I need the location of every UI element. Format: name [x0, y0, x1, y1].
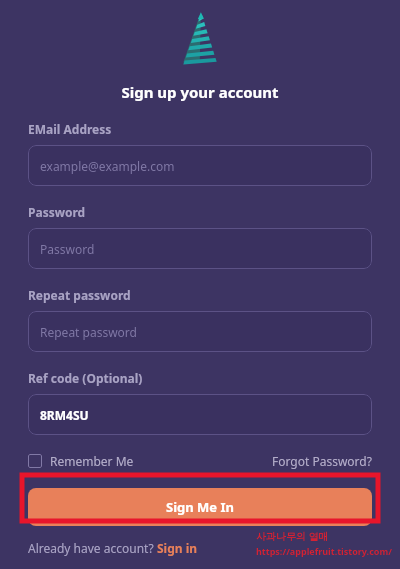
staticText: Forgot Password? [272, 453, 372, 469]
staticText: Already have account? [28, 540, 157, 556]
staticText: Password [28, 204, 86, 220]
staticText: 8RM4SU [40, 407, 89, 423]
button[interactable]: Sign Me In [28, 488, 372, 526]
staticText: Sign up your account [28, 82, 372, 102]
button[interactable]: Remember Me [28, 451, 134, 471]
staticText: Sign Me In [166, 498, 235, 516]
button[interactable]: Sign in [157, 540, 198, 556]
staticText: 사과나무의 열매 [256, 529, 329, 543]
button[interactable]: 8RM4SU [28, 394, 372, 435]
staticText: example@example.com [40, 158, 175, 174]
staticText: EMail Address [28, 121, 112, 137]
staticText: Remember Me [50, 453, 134, 469]
staticText: Ref code (Optional) [28, 370, 143, 386]
staticText: Sign in [157, 540, 198, 556]
staticText: https://applefruit.tistory.com/ [256, 545, 392, 557]
button[interactable]: Forgot Password? [272, 451, 372, 471]
staticText: Repeat password [28, 287, 131, 303]
button[interactable]: Repeat password [28, 311, 372, 352]
staticText: Repeat password [40, 324, 137, 340]
staticText: Password [40, 241, 95, 257]
button[interactable]: example@example.com [28, 145, 372, 186]
button[interactable]: Password [28, 228, 372, 269]
